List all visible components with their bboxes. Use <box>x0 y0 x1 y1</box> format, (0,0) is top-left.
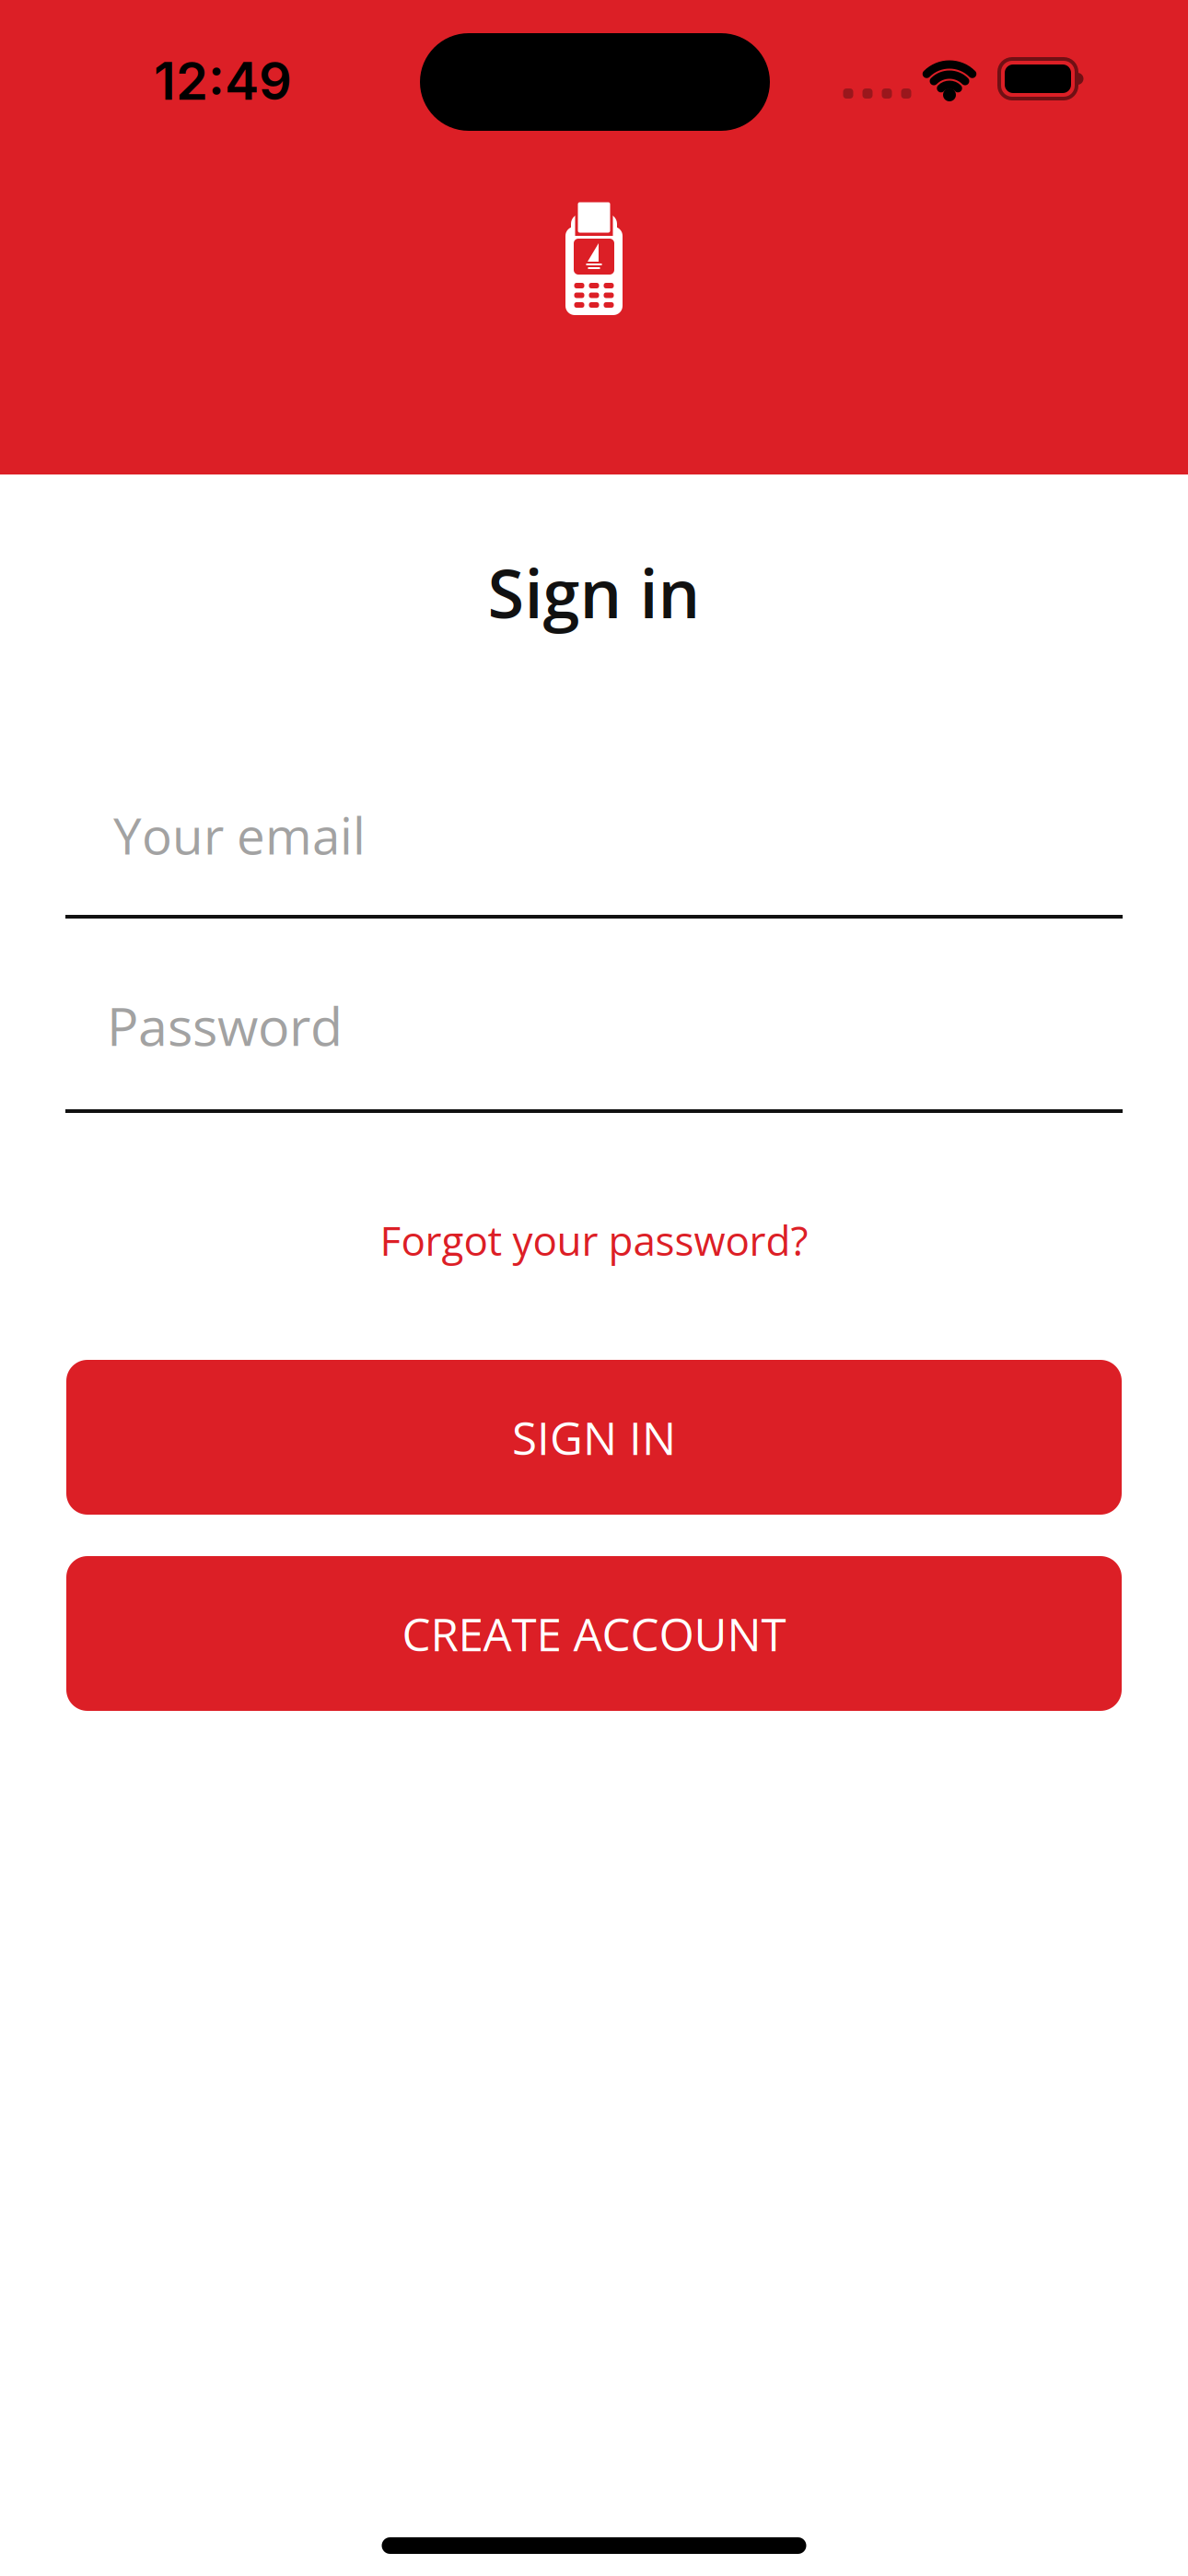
staticText: Sign in <box>488 547 700 638</box>
staticText: SIGN IN <box>512 1406 676 1468</box>
staticText: Forgot your password? <box>380 1212 808 1268</box>
staticText: CREATE ACCOUNT <box>402 1603 786 1664</box>
staticText: Password <box>107 989 343 1061</box>
staticText: 12:49 <box>154 50 292 112</box>
staticText: Your email <box>113 801 366 869</box>
